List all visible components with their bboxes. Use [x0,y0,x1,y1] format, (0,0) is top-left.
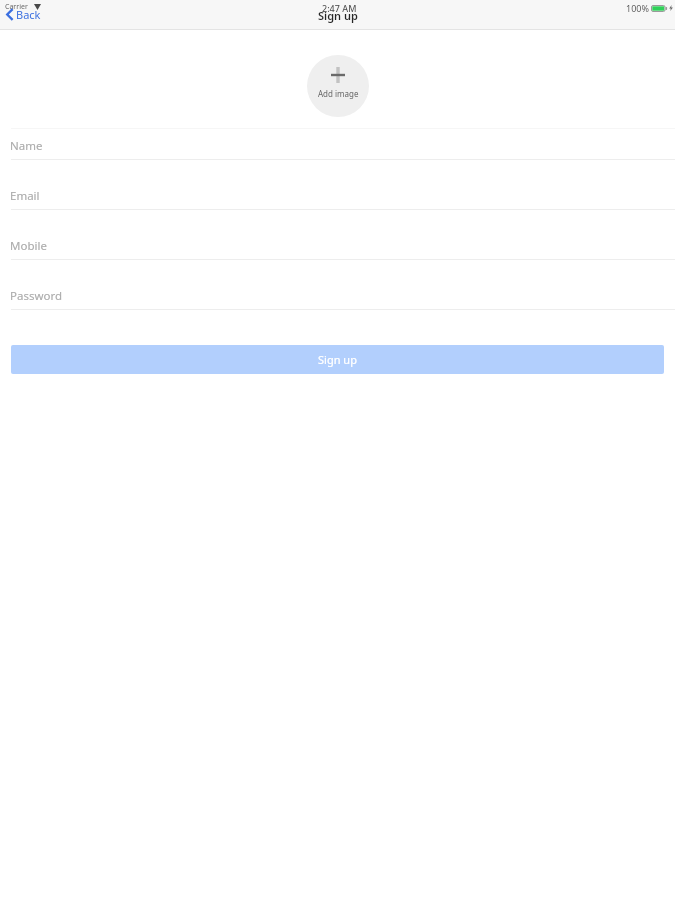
button[interactable]: Email [0,160,675,210]
button[interactable]: Mobile [0,210,675,260]
button[interactable]: Back [0,6,49,23]
button[interactable]: Sign up [11,345,664,374]
staticText: Email [10,188,40,204]
button[interactable]: Password [0,260,675,310]
staticText: Mobile [10,238,47,254]
staticText: Add image [318,88,359,99]
staticText: Sign up [318,352,357,367]
staticText: Sign up [318,8,358,23]
staticText: Carrier [5,2,28,12]
staticText: Password [10,288,63,304]
staticText: Name [10,138,43,154]
staticText: 100% [626,2,649,14]
button[interactable]: Add image [307,55,369,117]
button[interactable]: Name [0,110,675,160]
staticText: Back [16,7,41,22]
staticText: 2:47 AM [322,2,357,14]
